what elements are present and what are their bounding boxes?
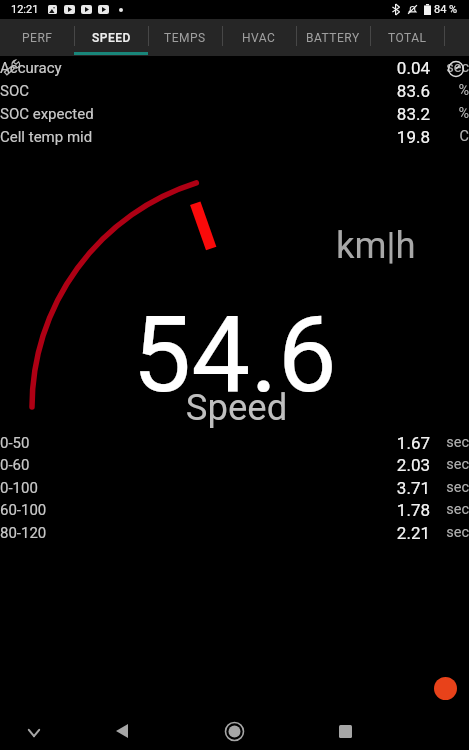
button[interactable]: TEMPS [148,19,222,56]
staticText: 12:21 [11,3,39,16]
button[interactable]: Timer [448,61,464,77]
staticText: SOC [0,82,29,100]
staticText: Speed [2,386,469,429]
staticText: 60-100 [0,501,47,519]
staticText: sec [429,524,469,541]
button[interactable]: Recent apps [327,713,363,749]
staticText: % [429,105,469,122]
button[interactable]: Back [104,713,140,749]
staticText: 1.78 [350,500,430,520]
button[interactable]: 0-100 [0,476,469,499]
staticText: BATTERY [306,31,360,45]
staticText: 2.21 [350,523,430,543]
staticText: 19.8 [350,127,430,147]
staticText: 0-60 [0,456,30,474]
button[interactable]: TOTAL [370,19,444,56]
staticText: % [429,82,469,99]
staticText: HVAC [242,31,276,45]
staticText: sec [429,456,469,473]
button[interactable]: 80-120 [0,521,469,544]
button[interactable]: Start recording [434,677,457,700]
staticText: km|h [336,224,416,267]
staticText: sec [429,434,469,451]
staticText: C [429,128,469,145]
staticText: 0-50 [0,434,30,452]
button[interactable]: Hide keyboard [16,715,52,750]
staticText: Cell temp mid [0,128,93,146]
button[interactable]: Cell temp mid [0,125,469,148]
button[interactable]: BATTERY [296,19,370,56]
button[interactable]: SOC expected [0,102,469,125]
button[interactable]: HVAC [222,19,296,56]
staticText: Accuracy [0,59,62,77]
staticText: 3.71 [350,478,430,498]
button[interactable]: PERF [0,19,74,56]
button[interactable]: SOC [0,79,469,102]
button[interactable]: SPEED [74,19,148,56]
staticText: 2.03 [350,455,430,475]
staticText: SPEED [92,31,131,45]
staticText: 83.6 [350,81,430,101]
button[interactable]: Home [216,713,252,749]
staticText: TOTAL [388,31,427,45]
staticText: sec [429,501,469,518]
staticText: 83.2 [350,104,430,124]
staticText: 84 % [434,3,458,16]
staticText: 0-100 [0,479,38,497]
button[interactable]: Calibrate [2,59,22,79]
staticText: sec [429,479,469,496]
button[interactable]: 60-100 [0,498,469,521]
staticText: SOC expected [0,105,94,123]
staticText: TEMPS [164,31,206,45]
staticText: 80-120 [0,524,47,542]
staticText: 54.6 [0,294,469,417]
staticText: 0.04 [350,58,430,78]
button[interactable]: 0-60 [0,453,469,476]
button[interactable]: 0-50 [0,431,469,454]
button[interactable]: Accuracy [0,56,469,79]
staticText: 1.67 [350,433,430,453]
staticText: PERF [22,31,53,45]
staticText: sec [429,59,469,76]
